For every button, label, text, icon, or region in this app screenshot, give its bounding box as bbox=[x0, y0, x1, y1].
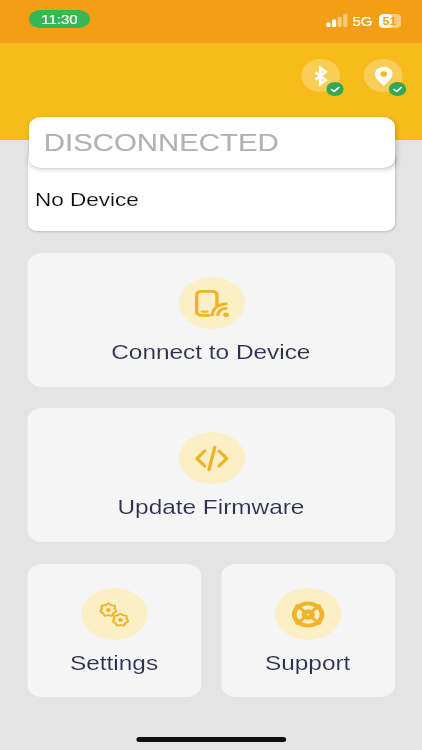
button[interactable]: Location enabled bbox=[364, 59, 406, 96]
staticText: Settings bbox=[70, 652, 159, 674]
staticText: No Device bbox=[35, 190, 140, 210]
button[interactable]: Bluetooth connected bbox=[301, 59, 344, 96]
staticText: Support bbox=[265, 652, 351, 674]
staticText: Connect to Device bbox=[111, 341, 311, 363]
staticText: Update Firmware bbox=[117, 496, 305, 518]
staticText: 11:30 bbox=[41, 13, 79, 26]
button[interactable]: Connect to Device bbox=[27, 253, 395, 387]
button[interactable]: Support bbox=[221, 564, 395, 697]
staticText: DISCONNECTED bbox=[44, 130, 280, 156]
button[interactable]: No Device bbox=[27, 150, 395, 231]
button[interactable]: Settings bbox=[27, 564, 201, 697]
staticText: 5G bbox=[352, 15, 374, 28]
button[interactable]: DISCONNECTED bbox=[29, 117, 395, 168]
button[interactable]: Update Firmware bbox=[27, 408, 395, 542]
staticText: 51 bbox=[382, 16, 397, 27]
